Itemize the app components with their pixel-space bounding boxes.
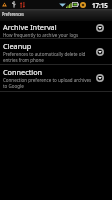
staticText: Connection preference to upload archives [3, 77, 92, 83]
button[interactable]: More options [95, 73, 105, 83]
staticText: to Google [3, 83, 24, 89]
button[interactable]: Connection [0, 65, 112, 91]
staticText: Preferences to automatically delete old [3, 51, 86, 57]
staticText: Connection [3, 67, 43, 77]
button[interactable]: More options [95, 23, 105, 33]
staticText: How frequently to archive your logs [3, 32, 79, 38]
staticText: 17:15 [92, 1, 108, 9]
staticText: Cleanup [3, 41, 32, 51]
staticText: Preferences [2, 10, 24, 18]
staticText: entries from phone [3, 57, 44, 63]
button[interactable]: Cleanup [0, 39, 112, 64]
button[interactable]: Archive Interval [0, 21, 112, 38]
staticText: Archive Interval [3, 22, 57, 32]
button[interactable]: More options [95, 47, 105, 57]
